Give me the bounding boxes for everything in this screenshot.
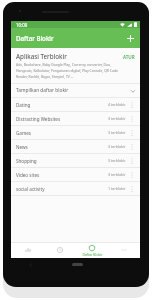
staticText: Daftar Blokir xyxy=(82,252,103,257)
staticText: Aplikasi Terblokir xyxy=(16,52,67,60)
button[interactable]: Video sites xyxy=(11,168,140,181)
staticText: Tampilkan daftar blokir xyxy=(16,87,130,94)
button[interactable]: Waktu xyxy=(44,242,76,258)
button[interactable]: Distracting Websites xyxy=(11,112,140,125)
button[interactable]: More options xyxy=(128,143,135,150)
staticText: Ads, Bookshare, Baby Google Play, Curren… xyxy=(16,62,120,79)
staticText: 1 terblokir xyxy=(108,186,126,191)
staticText: 3 terblokir xyxy=(108,158,126,163)
staticText: Games xyxy=(16,130,108,136)
staticText: social activity xyxy=(16,186,108,192)
button[interactable]: Games xyxy=(11,126,140,139)
button[interactable]: social activity xyxy=(11,182,140,195)
button[interactable]: More options xyxy=(128,185,135,192)
button[interactable]: Dating xyxy=(11,98,140,111)
button[interactable]: More options xyxy=(128,171,135,178)
staticText: Video sites xyxy=(16,172,108,178)
staticText: 3 terblokir xyxy=(108,116,126,121)
staticText: Dating xyxy=(16,102,108,108)
staticText: 3 terblokir xyxy=(108,130,126,135)
button[interactable]: Shopping xyxy=(11,154,140,167)
staticText: 3 terblokir xyxy=(108,172,126,177)
button[interactable]: Back xyxy=(27,261,34,268)
button[interactable]: More options xyxy=(128,157,135,164)
staticText: Shopping xyxy=(16,158,108,164)
button[interactable]: ATUR xyxy=(122,52,136,62)
button[interactable]: Add xyxy=(123,31,137,45)
button[interactable]: Statistik xyxy=(11,242,44,258)
button[interactable]: Lainnya xyxy=(108,242,140,258)
staticText: 3 terblokir xyxy=(108,144,126,149)
button[interactable]: More options xyxy=(128,115,135,122)
staticText: News xyxy=(16,144,108,150)
button[interactable]: Tampilkan daftar blokir xyxy=(11,84,140,97)
staticText: 4 terblokir xyxy=(108,102,126,107)
staticText: Daftar Blokir xyxy=(16,34,54,42)
staticText: Distracting Websites xyxy=(16,116,108,122)
button[interactable]: Daftar Blokir xyxy=(76,242,108,258)
staticText: 10:00 xyxy=(16,22,28,28)
button[interactable]: More options xyxy=(128,129,135,136)
button[interactable]: News xyxy=(11,140,140,153)
button[interactable]: More options xyxy=(128,101,135,108)
button[interactable]: Aplikasi Terblokir xyxy=(11,48,140,83)
